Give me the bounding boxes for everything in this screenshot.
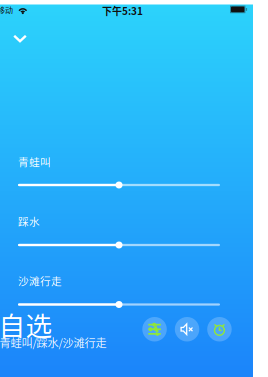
staticText: 沙滩行走 [18, 273, 62, 288]
staticText: 下午5:31 [102, 3, 143, 18]
button[interactable]: Mute [175, 317, 199, 341]
button[interactable]: Collapse [0, 23, 40, 53]
button[interactable]: Mixer [142, 317, 167, 341]
staticText: 青蛙叫/踩水/沙滩行走 [0, 334, 106, 350]
staticText: 青蛙叫 [18, 154, 51, 169]
staticText: 踩水 [18, 213, 40, 229]
button[interactable]: Sleep timer [207, 317, 232, 341]
staticText: 自选 [0, 305, 52, 344]
staticText: 中国移动 [0, 4, 13, 16]
